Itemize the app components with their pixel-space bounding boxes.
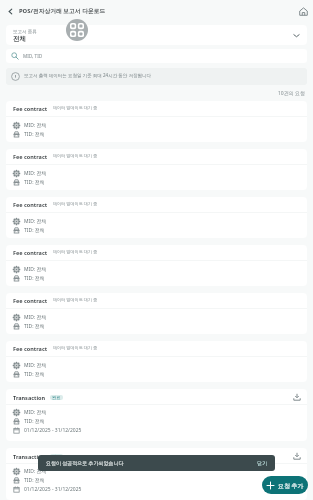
- button[interactable]: Fee contract: [6, 245, 307, 286]
- staticText: MID: 전체: [24, 314, 47, 321]
- staticText: TID: 전체: [24, 418, 45, 425]
- staticText: MID: 전체: [24, 266, 47, 273]
- button[interactable]: 요청이 성공적으로 추가되었습니다: [38, 455, 275, 471]
- staticText: 데이터 업데이트 대기 중: [53, 105, 98, 111]
- button[interactable]: Download: [291, 450, 303, 462]
- staticText: TID: 전체: [24, 323, 45, 330]
- staticText: Fee contract: [13, 153, 48, 160]
- staticText: 10건의 요청: [278, 90, 306, 97]
- button[interactable]: 보고서 종류: [6, 25, 307, 45]
- staticText: 데이터 업데이트 대기 중: [53, 345, 98, 351]
- staticText: TID: 전체: [24, 275, 45, 282]
- staticText: POS/전자상거래 보고서 다운로드: [19, 7, 106, 15]
- staticText: TID: 전체: [24, 371, 45, 378]
- staticText: 보고서 출력 데이터는 요청일 기준 최대 24시간 동안 저장됩니다: [24, 72, 152, 78]
- staticText: 완료: [52, 454, 61, 459]
- button[interactable]: Fee contract: [6, 149, 307, 190]
- button[interactable]: Home: [296, 4, 310, 18]
- staticText: 요청 추가: [278, 482, 304, 490]
- staticText: MID: 전체: [24, 218, 47, 225]
- staticText: 요청이 성공적으로 추가되었습니다: [46, 460, 124, 467]
- staticText: MID: 전체: [24, 362, 47, 369]
- staticText: 보고서 종류: [13, 28, 37, 34]
- button[interactable]: Transaction: [6, 389, 307, 441]
- staticText: 데이터 업데이트 대기 중: [53, 153, 98, 159]
- staticText: Fee contract: [13, 297, 48, 304]
- staticText: Transaction: [13, 394, 46, 401]
- staticText: Fee contract: [13, 345, 48, 352]
- button[interactable]: Fee contract: [6, 341, 307, 382]
- staticText: 전체: [13, 35, 26, 43]
- staticText: 완료: [52, 395, 61, 400]
- staticText: MID: 전체: [24, 170, 47, 177]
- button[interactable]: Fee contract: [6, 293, 307, 334]
- button[interactable]: MID, TID: [6, 49, 307, 63]
- staticText: TID: 전체: [24, 227, 45, 234]
- staticText: Fee contract: [13, 201, 48, 208]
- staticText: Fee contract: [13, 249, 48, 256]
- staticText: 데이터 업데이트 대기 중: [53, 201, 98, 207]
- staticText: MID, TID: [23, 53, 43, 59]
- button[interactable]: Transaction: [6, 448, 307, 500]
- staticText: 데이터 업데이트 대기 중: [53, 297, 98, 303]
- staticText: 01/12/2025 - 31/12/2025: [24, 486, 82, 493]
- staticText: 01/12/2025 - 31/12/2025: [24, 427, 82, 434]
- button[interactable]: Fee contract: [6, 101, 307, 142]
- staticText: MID: 전체: [24, 122, 47, 129]
- staticText: 데이터 업데이트 대기 중: [53, 249, 98, 255]
- button[interactable]: Fee contract: [6, 197, 307, 238]
- staticText: Fee contract: [13, 105, 48, 112]
- staticText: TID: 전체: [24, 131, 45, 138]
- button[interactable]: Back: [3, 4, 17, 18]
- staticText: TID: 전체: [24, 477, 45, 484]
- staticText: 닫기: [257, 460, 267, 466]
- staticText: TID: 전체: [24, 179, 45, 186]
- staticText: Transaction: [13, 453, 46, 460]
- staticText: MID: 전체: [24, 409, 47, 416]
- button[interactable]: Download: [291, 391, 303, 403]
- button[interactable]: 요청 추가: [262, 476, 308, 494]
- staticText: MID: 전체: [24, 468, 47, 475]
